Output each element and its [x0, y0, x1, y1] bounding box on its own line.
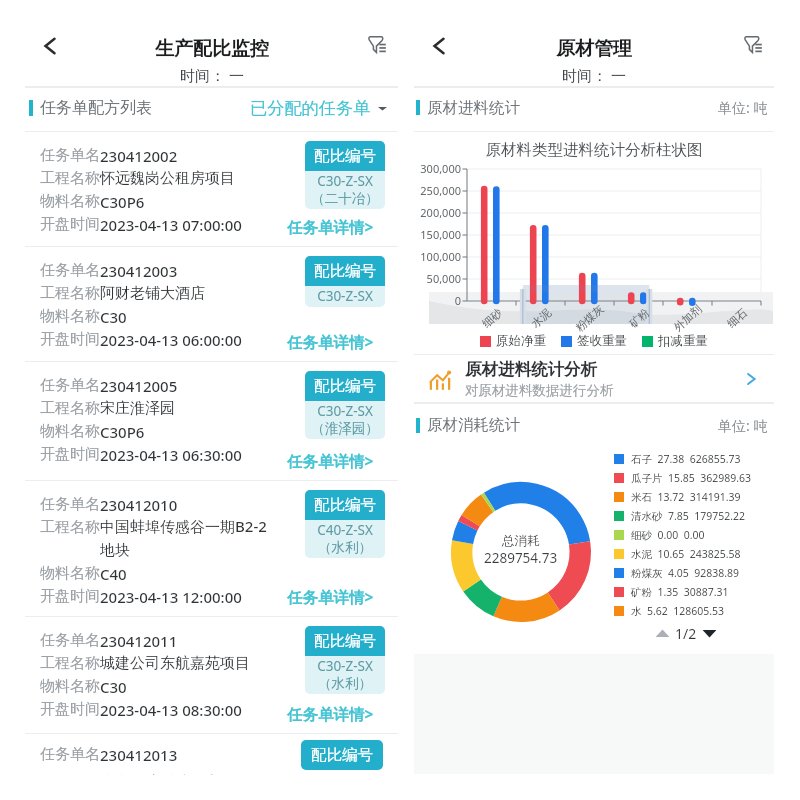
button[interactable]: Previous [655, 626, 670, 641]
staticText: 230412003 [100, 261, 178, 281]
staticText: 城建公司东航嘉苑项目 [100, 654, 250, 673]
staticText: 150,000 [420, 227, 461, 242]
staticText: 配比编号 [311, 745, 373, 765]
staticText: 230412013 [100, 745, 178, 765]
button[interactable]: 任务单详情> [287, 331, 374, 352]
staticText: 时间： 一 [562, 65, 626, 85]
staticText: 230412010 [100, 495, 178, 515]
button[interactable]: 任务单名 [25, 734, 398, 775]
staticText: 工程名称 [40, 284, 100, 303]
staticText: 签收重量 [577, 333, 627, 349]
staticText: 工程名称 [40, 518, 100, 537]
staticText: 任务单名 [40, 631, 100, 650]
staticText: 物料名称 [40, 564, 100, 583]
staticText: 230412002 [100, 146, 178, 166]
button[interactable]: Back [33, 28, 69, 64]
staticText: （淮泽园） [311, 420, 379, 437]
staticText: 开盘时间 [40, 445, 100, 464]
staticText: 任务单名 [40, 745, 100, 764]
staticText: 任务单名 [40, 495, 100, 514]
staticText: 矿粉 1.35 30887.31 [631, 585, 729, 599]
button[interactable]: 任务单名 [25, 247, 398, 361]
button[interactable]: 任务单详情> [287, 450, 374, 471]
button[interactable]: 任务单名 [25, 132, 398, 246]
staticText: 中国蚌埠传感谷一期B2-2地块 [100, 516, 278, 560]
staticText: 2023-04-13 06:00:00 [100, 330, 242, 350]
staticText: 任务单详情> [287, 331, 374, 352]
staticText: 单位: 吨 [718, 416, 768, 435]
staticText: 2289754.73 [484, 549, 558, 567]
staticText: 生产配比监控 [155, 37, 269, 61]
button[interactable]: 任务单详情> [287, 703, 374, 724]
staticText: C30 [100, 307, 127, 327]
staticText: 2023-04-13 12:00:00 [100, 587, 242, 607]
staticText: C30 [100, 677, 127, 697]
staticText: 0 [454, 293, 461, 308]
staticText: （水利） [318, 675, 372, 692]
staticText: （二十冶） [311, 190, 379, 207]
staticText: 原材进料统计 [427, 98, 520, 118]
staticText: 100,000 [420, 249, 461, 264]
button[interactable]: 任务单详情> [287, 586, 374, 607]
staticText: 开盘时间 [40, 215, 100, 234]
staticText: C30-Z-SX [317, 287, 373, 305]
staticText: 2023-04-13 07:00:00 [100, 215, 242, 235]
button[interactable]: 原材进料统计分析 [428, 355, 760, 402]
staticText: 配比编号 [314, 146, 376, 166]
staticText: 配比编号 [314, 376, 376, 396]
staticText: C30-Z-SX [317, 657, 373, 675]
staticText: （水利） [318, 539, 372, 556]
staticText: 时间： 一 [180, 65, 244, 85]
button[interactable]: 任务单详情> [287, 216, 374, 237]
staticText: 原材料类型进料统计分析柱状图 [414, 140, 774, 160]
button[interactable]: 配比编号 [305, 141, 385, 209]
staticText: 石子 27.38 626855.73 [631, 452, 741, 466]
button[interactable]: 配比编号 [305, 256, 385, 307]
staticText: C30P6 [100, 422, 145, 442]
staticText: 任务单名 [40, 261, 100, 280]
staticText: 物料名称 [40, 677, 100, 696]
staticText: 清水砂 7.85 179752.22 [631, 509, 746, 523]
button[interactable]: 任务单名 [25, 362, 398, 480]
staticText: 物料名称 [40, 192, 100, 211]
button[interactable]: 任务单名 [25, 481, 398, 616]
staticText: 2023-04-13 06:30:00 [100, 445, 242, 465]
staticText: 50,000 [426, 271, 461, 286]
button[interactable]: Back [422, 28, 458, 64]
button[interactable]: 已分配的任务单 [250, 97, 387, 119]
staticText: 扣减重量 [658, 333, 708, 349]
staticText: 200,000 [420, 205, 461, 220]
button[interactable]: Filter [737, 28, 769, 60]
button[interactable]: Next [702, 626, 717, 641]
staticText: 物料名称 [40, 307, 100, 326]
staticText: 阿财老铺大酒店 [100, 284, 205, 303]
staticText: 外加剂 [671, 302, 704, 334]
staticText: 物料名称 [40, 422, 100, 441]
staticText: 1/2 [675, 624, 697, 643]
staticText: 任务单详情> [287, 216, 374, 237]
staticText: 原材消耗统计 [427, 415, 520, 435]
staticText: 粉煤灰 [573, 302, 606, 334]
staticText: 230412005 [100, 376, 178, 396]
staticText: C40-Z-SX [317, 521, 373, 539]
staticText: 水泥 [528, 305, 554, 330]
staticText: 300,000 [420, 161, 461, 176]
staticText: 细石 [724, 305, 750, 330]
staticText: 已分配的任务单 [250, 97, 371, 119]
button[interactable]: 配比编号 [305, 490, 385, 558]
staticText: 对原材进料数据进行分析 [465, 382, 614, 399]
button[interactable]: 配比编号 [305, 626, 385, 694]
staticText: 开盘时间 [40, 700, 100, 719]
staticText: 工程名称 [40, 399, 100, 418]
staticText: 水 5.62 128605.53 [631, 604, 725, 618]
staticText: 南岗五建材造船宿项目 [100, 773, 250, 775]
button[interactable]: 任务单名 [25, 617, 398, 733]
button[interactable]: Filter [361, 28, 393, 60]
staticText: C40 [100, 564, 127, 584]
button[interactable]: 配比编号 [301, 740, 383, 770]
staticText: 细砂 0.00 0.00 [631, 528, 705, 542]
staticText: 粉煤灰 4.05 92838.89 [631, 566, 740, 580]
staticText: 原始净重 [496, 333, 546, 349]
button[interactable]: 配比编号 [305, 371, 385, 439]
